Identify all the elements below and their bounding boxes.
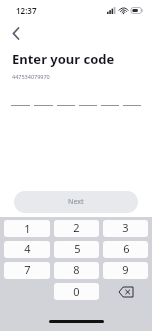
staticText: 4	[24, 241, 31, 256]
button[interactable]: 7	[4, 262, 50, 279]
button[interactable]: Back	[5, 22, 27, 44]
staticText: 12:37	[16, 5, 37, 16]
staticText: 1	[24, 221, 31, 236]
staticText: Enter your code	[12, 50, 115, 68]
button[interactable]: Backspace	[119, 283, 133, 300]
button[interactable]: 1	[4, 220, 50, 237]
button[interactable]: 4	[4, 241, 50, 258]
staticText: 6	[123, 241, 130, 256]
staticText: 3	[122, 220, 129, 235]
staticText: 5	[74, 241, 81, 256]
button[interactable]: 3	[103, 220, 148, 237]
button[interactable]: 0	[54, 283, 99, 300]
button[interactable]: 6	[103, 241, 148, 258]
staticText: 9	[122, 262, 129, 277]
staticText: Next	[68, 197, 84, 207]
staticText: 447534079970	[12, 73, 50, 80]
staticText: 8	[73, 262, 80, 277]
button[interactable]: 8	[54, 262, 99, 279]
staticText: 2	[73, 220, 80, 235]
staticText: 7	[24, 262, 31, 277]
staticText: 0	[73, 284, 80, 299]
button[interactable]: 2	[54, 220, 99, 237]
button[interactable]: Next	[14, 191, 138, 213]
button[interactable]: 9	[103, 262, 148, 279]
button[interactable]: 5	[54, 241, 99, 258]
